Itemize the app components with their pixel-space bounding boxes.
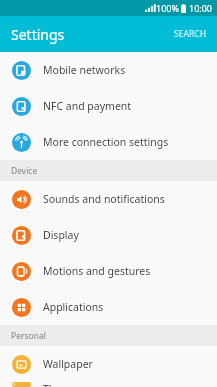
staticText: More connection settings [43, 135, 169, 149]
staticText: Personal [11, 330, 46, 342]
button[interactable]: Mobile networks [0, 52, 217, 88]
staticText: 10:00 [189, 2, 213, 14]
staticText: Applications [43, 300, 104, 314]
staticText: Motions and gestures [43, 264, 151, 278]
button[interactable]: More connection settings [0, 124, 217, 160]
button[interactable]: Motions and gestures [0, 253, 217, 289]
button[interactable]: Themes [0, 382, 217, 387]
staticText: SEARCH [174, 28, 207, 40]
staticText: 100% [156, 2, 179, 14]
button[interactable]: Display [0, 217, 217, 253]
button[interactable]: SEARCH [164, 20, 217, 48]
staticText: Mobile networks [43, 63, 126, 77]
button[interactable]: Wallpaper [0, 346, 217, 382]
staticText: Device [11, 165, 38, 177]
staticText: NFC and payment [43, 99, 132, 113]
button[interactable]: Applications [0, 289, 217, 325]
staticText: Themes [43, 382, 83, 387]
staticText: Display [43, 228, 79, 242]
staticText: Wallpaper [43, 357, 93, 371]
staticText: Settings [11, 25, 65, 44]
button[interactable]: Sounds and notifications [0, 181, 217, 217]
button[interactable]: NFC and payment [0, 88, 217, 124]
staticText: Sounds and notifications [43, 192, 165, 206]
